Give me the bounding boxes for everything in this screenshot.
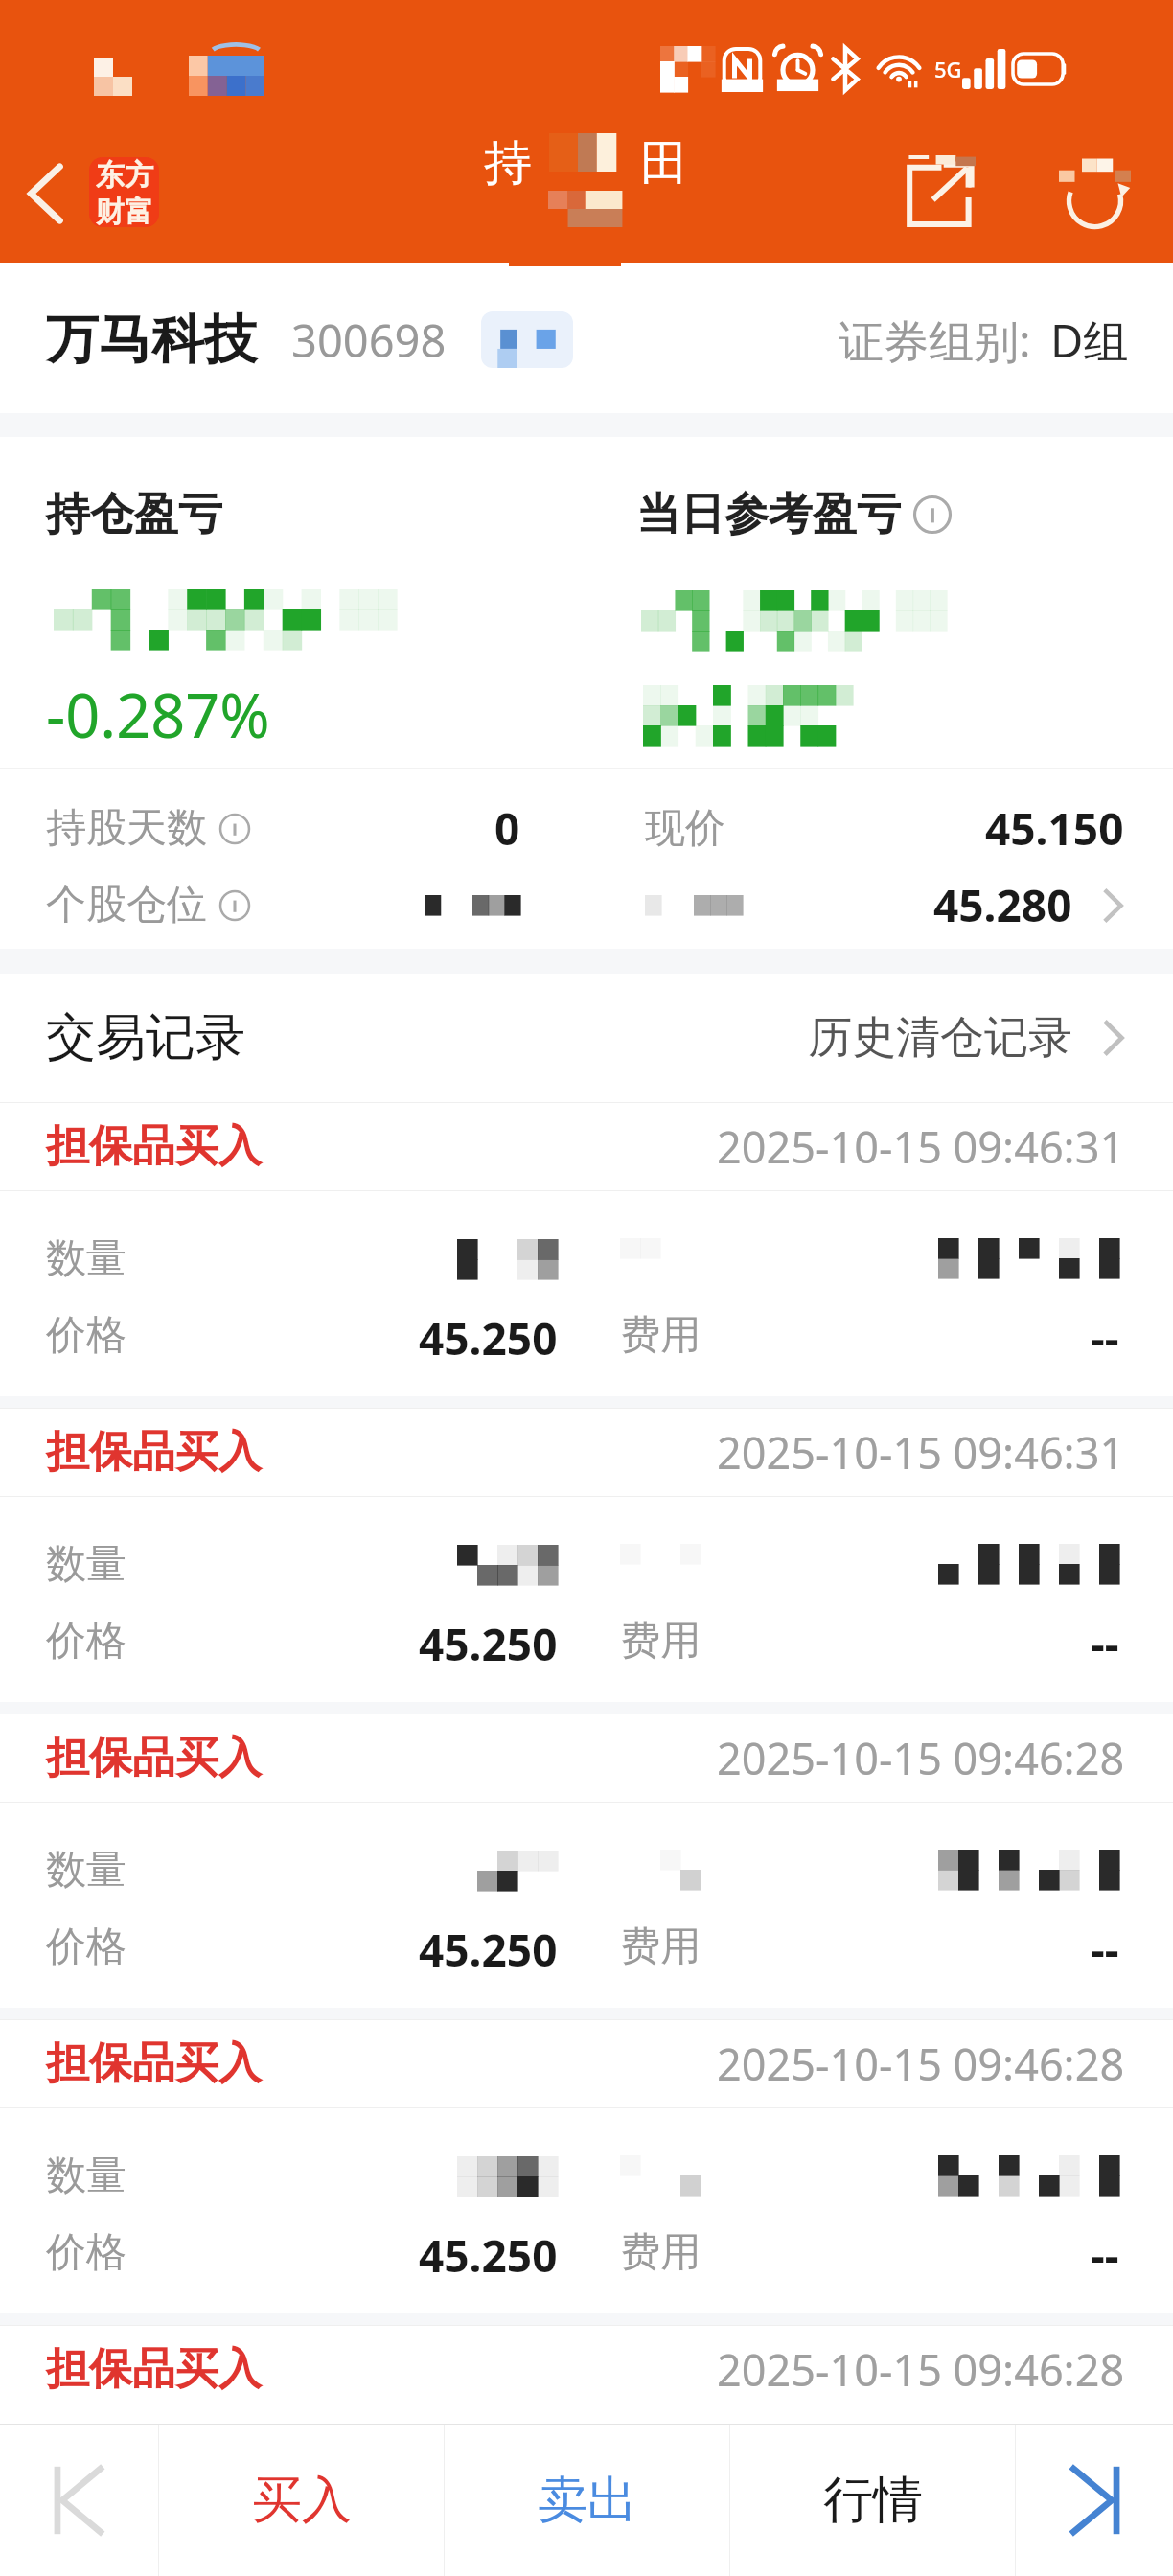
staticText: 现价 [645,803,725,854]
staticText: 担保品买入 [46,1731,262,1785]
staticText: -- [1091,1920,1119,1973]
staticText: 45.250 [419,2225,558,2279]
staticText: 价格 [46,1310,126,1361]
staticText: 持股天数 [46,803,207,854]
button[interactable]: 担保品买入 [46,1409,1125,1496]
staticText: 2025-10-15 09:46:28 [717,2035,1125,2093]
staticText: 2025-10-15 09:46:28 [717,2340,1125,2399]
staticText: 0 [494,798,520,859]
button[interactable]: Share [889,133,991,254]
staticText: 费用 [620,1310,701,1361]
button[interactable]: First page [0,2425,158,2576]
staticText: 万马科技 [46,307,257,373]
staticText: -- [1091,2225,1119,2279]
staticText: 45.250 [419,1920,558,1973]
staticText: 价格 [46,1921,126,1972]
staticText: 价格 [46,2227,126,2278]
button[interactable]: 行情 [730,2425,1015,2576]
staticText: 数量 [46,2150,126,2201]
staticText: 持 [484,133,532,194]
button[interactable]: 担保品买入 [46,1714,1125,1802]
button[interactable]: 数量 [0,1497,1173,1702]
staticText: 交易记录 [46,1006,245,1069]
button[interactable]: 历史清仓记录 [808,1010,1125,1066]
staticText: 当日参考盈亏 [636,487,901,542]
staticText: 2025-10-15 09:46:28 [717,1729,1125,1787]
staticText: 证券组别: [839,310,1031,371]
staticText: 费用 [620,1616,701,1667]
button[interactable]: 担保品买入 [46,2020,1125,2107]
staticText: 45.250 [419,1308,558,1362]
button[interactable]: 卖出 [445,2425,729,2576]
button[interactable]: 数量 [0,1803,1173,2008]
staticText: 担保品买入 [46,2342,262,2397]
staticText: 东方 [96,157,153,194]
button[interactable]: 个股仓位 [46,866,1124,943]
staticText: 持仓盈亏 [46,487,222,542]
staticText: 45.150 [985,798,1124,859]
staticText: 卖出 [538,2469,637,2532]
staticText: 数量 [46,1845,126,1896]
staticText: 担保品买入 [46,1425,262,1480]
staticText: 田 [640,133,688,194]
staticText: 45.250 [419,1614,558,1667]
staticText: 数量 [46,1233,126,1284]
staticText: 买入 [252,2469,352,2532]
staticText: 费用 [620,2227,701,2278]
staticText: 2025-10-15 09:46:31 [717,1117,1125,1176]
button[interactable]: Refresh [1044,133,1145,254]
staticText: 价格 [46,1616,126,1667]
staticText: 担保品买入 [46,1119,262,1174]
button[interactable]: 担保品买入 [46,1103,1125,1190]
staticText: -- [1091,1614,1119,1667]
staticText: 个股仓位 [46,880,207,931]
button[interactable]: 担保品买入 [46,2326,1125,2413]
staticText: 费用 [620,1921,701,1972]
button[interactable]: Back [2,140,90,247]
staticText: 担保品买入 [46,2036,262,2091]
staticText: -- [1091,1308,1119,1362]
staticText: 财富 [96,194,153,227]
button[interactable]: 买入 [159,2425,444,2576]
staticText: -0.287% [46,674,270,756]
button[interactable]: Last page [1016,2425,1173,2576]
staticText: 行情 [823,2469,923,2532]
staticText: 45.280 [933,875,1072,935]
button[interactable]: 数量 [0,2108,1173,2313]
button[interactable]: 数量 [0,1191,1173,1396]
staticText: 5G [934,55,962,83]
staticText: 2025-10-15 09:46:31 [717,1423,1125,1482]
staticText: 数量 [46,1539,126,1590]
staticText: D组 [1050,310,1129,371]
staticText: 历史清仓记录 [808,1010,1072,1066]
button[interactable]: 东方 [89,157,159,227]
staticText: 300698 [291,310,447,371]
